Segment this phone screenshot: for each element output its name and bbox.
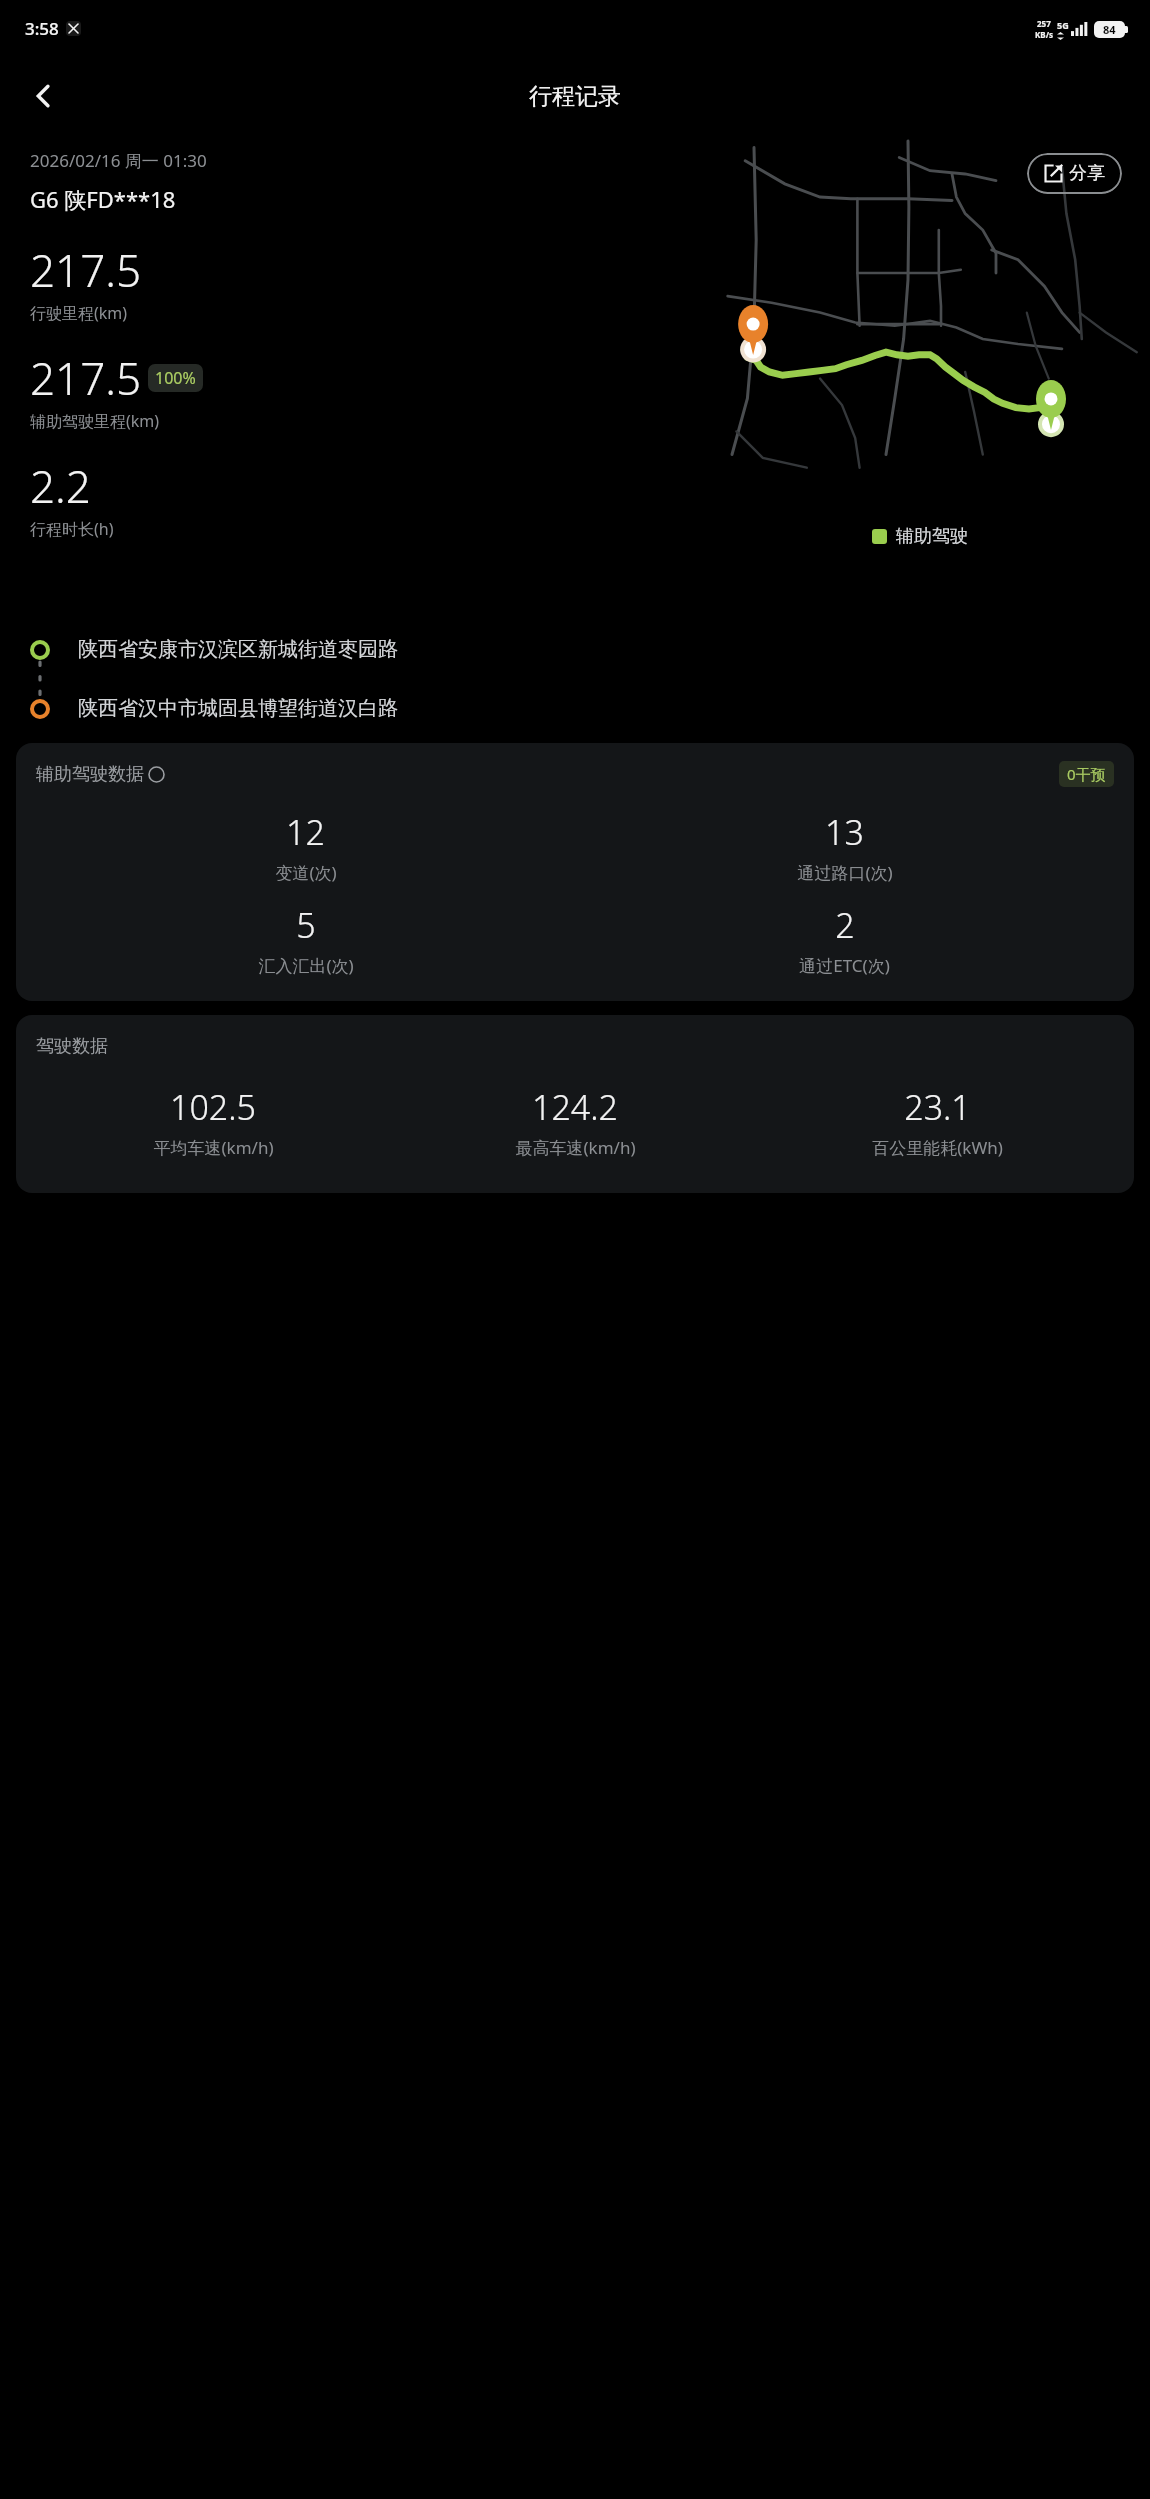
staticText: 行程时长(h) [30, 518, 114, 540]
staticText: 分享 [1069, 162, 1105, 185]
staticText: 100% [155, 367, 196, 389]
staticText: 行程记录 [529, 82, 621, 111]
staticText: 行驶里程(km) [30, 302, 128, 324]
staticText: 汇入汇出(次) [258, 954, 354, 977]
staticText: 陕西省汉中市城固县博望街道汉白路 [78, 696, 398, 721]
staticText: 最高车速(km/h) [515, 1136, 636, 1159]
staticText: 0干预 [1067, 764, 1106, 784]
staticText: 23.1 [904, 1084, 971, 1130]
staticText: 百公里能耗(kWh) [872, 1136, 1003, 1159]
staticText: 陕西省安康市汉滨区新城街道枣园路 [78, 637, 398, 662]
staticText: 通过ETC(次) [799, 954, 890, 977]
staticText: 驾驶数据 [36, 1035, 108, 1058]
button[interactable]: Back [18, 70, 70, 122]
staticText: 102.5 [170, 1084, 256, 1130]
staticText: 辅助驾驶 [896, 525, 968, 548]
staticText: 12 [286, 809, 325, 855]
button[interactable]: 分享 [1027, 153, 1122, 194]
button[interactable]: 驾驶数据 [16, 1015, 1134, 1193]
staticText: 5 [296, 902, 316, 948]
staticText: 217.5 [30, 240, 142, 300]
staticText: 124.2 [532, 1084, 618, 1130]
staticText: 257 [1037, 18, 1051, 29]
staticText: 84 [1103, 22, 1116, 37]
staticText: 通过路口(次) [797, 861, 893, 884]
staticText: 辅助驾驶数据 [36, 763, 144, 786]
button[interactable]: 辅助驾驶数据 [16, 743, 1134, 1001]
staticText: 2026/02/16 周一 01:30 [30, 149, 207, 172]
staticText: 217.5 [30, 348, 142, 408]
staticText: 平均车速(km/h) [153, 1136, 274, 1159]
staticText: KB/s [1035, 29, 1053, 40]
staticText: 辅助驾驶里程(km) [30, 410, 160, 432]
staticText: 2 [835, 902, 855, 948]
staticText: 3:58 [25, 17, 59, 40]
staticText: 2.2 [30, 456, 91, 516]
staticText: 5G [1057, 19, 1069, 31]
staticText: 变道(次) [275, 861, 337, 884]
staticText: 13 [825, 809, 864, 855]
staticText: G6 陕FD***18 [30, 184, 176, 214]
